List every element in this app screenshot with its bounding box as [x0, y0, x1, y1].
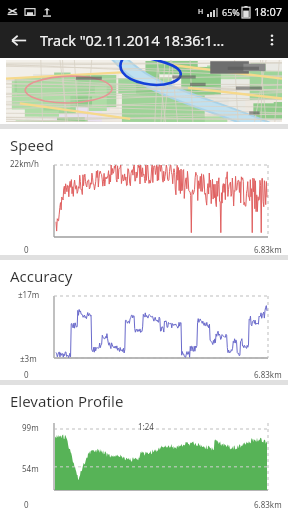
staticText: Accuracy [10, 266, 73, 286]
button[interactable]: Track map [6, 60, 282, 122]
staticText: 6.83km [254, 499, 282, 510]
staticText: Elevation Profile [10, 391, 124, 411]
button[interactable]: More options [256, 24, 288, 56]
button[interactable]: Accuracy [0, 260, 288, 380]
staticText: 6.83km [254, 369, 282, 380]
staticText: 54m [22, 463, 39, 474]
staticText: ±17m [18, 289, 40, 300]
staticText: 1:24 [138, 421, 154, 432]
staticText: Track "02.11.2014 18:36:1… [40, 30, 256, 50]
staticText: 0 [24, 369, 29, 380]
staticText: Speed [10, 135, 54, 155]
button[interactable]: Speed [0, 129, 288, 255]
staticText: 6.83km [254, 244, 282, 255]
button[interactable]: Elevation Profile [0, 385, 288, 512]
staticText: 99m [22, 422, 39, 433]
staticText: 22km/h [10, 158, 39, 169]
staticText: 0 [24, 499, 29, 510]
staticText: H [198, 7, 204, 17]
staticText: 18:07 [254, 4, 283, 19]
button[interactable]: Back [0, 22, 36, 58]
staticText: 65% [222, 6, 240, 18]
staticText: ±3m [20, 353, 37, 364]
staticText: 0 [24, 244, 29, 255]
